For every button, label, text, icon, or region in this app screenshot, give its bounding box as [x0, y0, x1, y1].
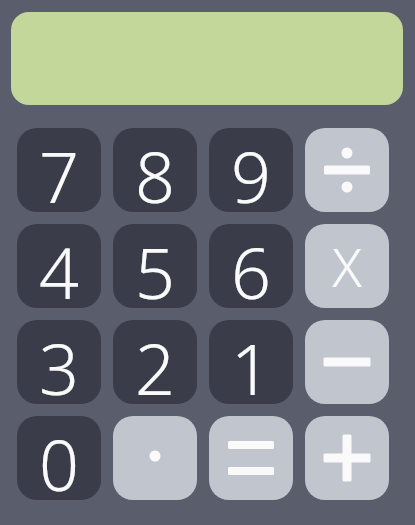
staticText: 6	[231, 224, 271, 308]
button[interactable]: Multiply	[305, 224, 389, 308]
button[interactable]: 4	[17, 224, 101, 308]
button[interactable]: Decimal point	[113, 416, 197, 500]
button[interactable]: 0	[17, 416, 101, 500]
button[interactable]: Subtract	[305, 320, 389, 404]
staticText: 1	[231, 320, 271, 404]
button[interactable]: 1	[209, 320, 293, 404]
button[interactable]: 8	[113, 128, 197, 212]
button[interactable]: 3	[17, 320, 101, 404]
staticText: 3	[39, 320, 79, 404]
staticText: 8	[135, 128, 175, 212]
staticText: X	[332, 229, 362, 303]
button[interactable]: 9	[209, 128, 293, 212]
button[interactable]: Equals	[209, 416, 293, 500]
button[interactable]: 6	[209, 224, 293, 308]
staticText: 9	[231, 128, 271, 212]
staticText: 0	[39, 416, 79, 500]
button[interactable]: Calculator display	[11, 12, 403, 105]
button[interactable]: Add	[305, 416, 389, 500]
button[interactable]: 2	[113, 320, 197, 404]
button[interactable]: Divide	[305, 128, 389, 212]
button[interactable]: 7	[17, 128, 101, 212]
button[interactable]: 5	[113, 224, 197, 308]
staticText: 5	[135, 224, 175, 308]
staticText: 4	[39, 224, 79, 308]
staticText: 7	[39, 128, 79, 212]
staticText: 2	[135, 320, 175, 404]
